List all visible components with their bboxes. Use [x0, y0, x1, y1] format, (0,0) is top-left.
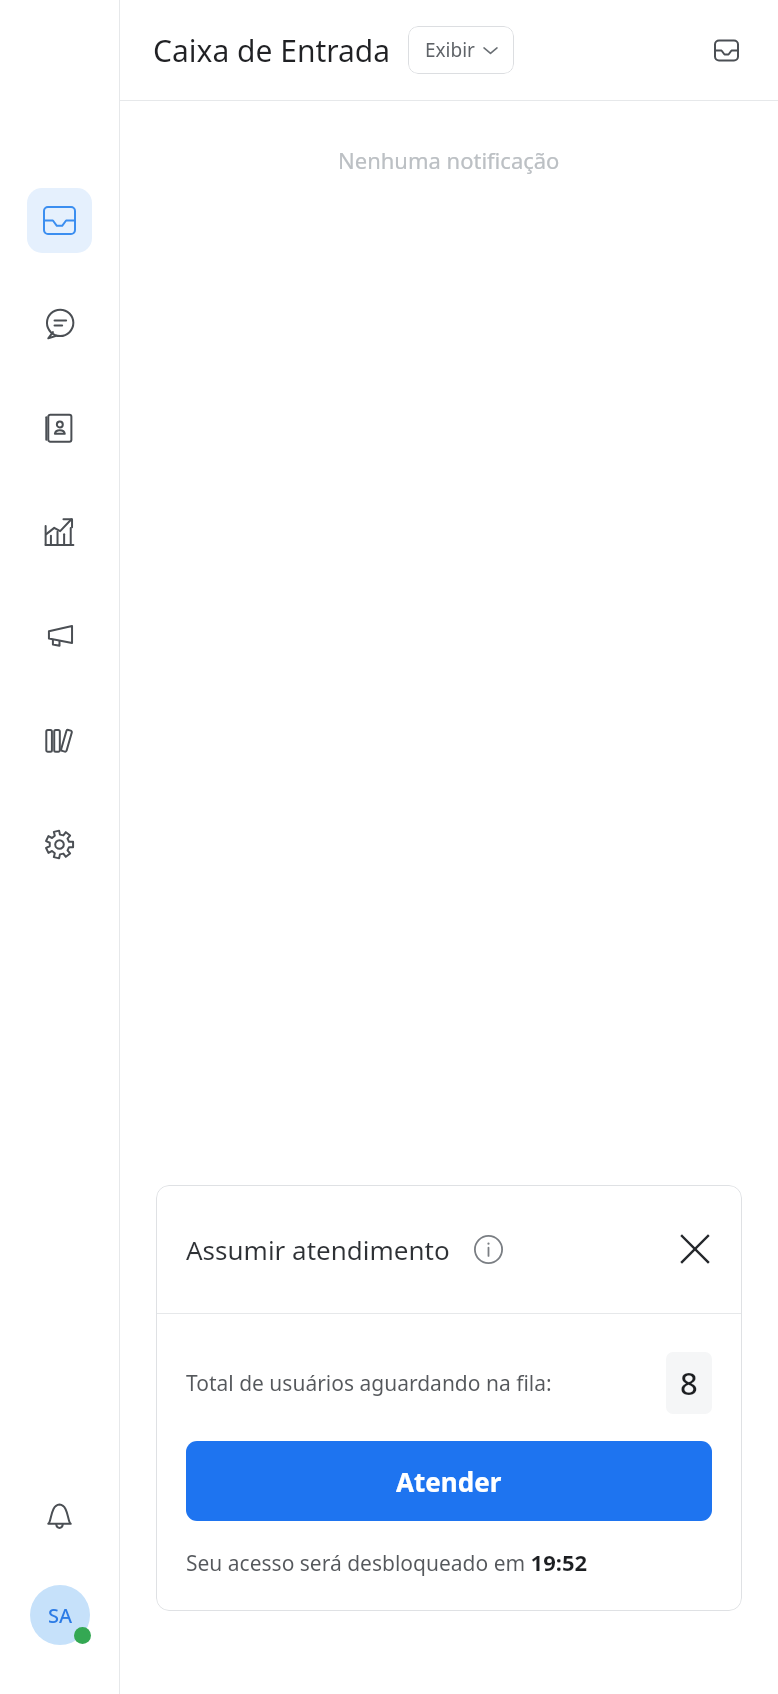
staticText: Nenhuma notificação: [338, 145, 560, 175]
button[interactable]: Atender: [186, 1441, 712, 1521]
button[interactable]: Perfil SA: [28, 1583, 92, 1647]
button[interactable]: Notificações: [27, 1484, 92, 1549]
button[interactable]: Caixa: [702, 26, 750, 74]
button[interactable]: Configurações: [27, 812, 92, 877]
staticText: Total de usuários aguardando na fila:: [186, 1369, 552, 1398]
staticText: SA: [48, 1602, 73, 1629]
staticText: 8: [680, 1362, 698, 1404]
button[interactable]: Relatórios: [27, 500, 92, 565]
button[interactable]: Informações: [468, 1229, 508, 1269]
staticText: Atender: [396, 1464, 502, 1499]
button[interactable]: Caixa de Entrada: [27, 188, 92, 253]
button[interactable]: Contatos: [27, 396, 92, 461]
button[interactable]: Campanhas: [27, 604, 92, 669]
staticText: Assumir atendimento: [186, 1232, 450, 1267]
button[interactable]: Exibir: [408, 26, 514, 74]
staticText: Caixa de Entrada: [153, 30, 391, 71]
button[interactable]: Fechar: [672, 1226, 718, 1272]
button[interactable]: Conversas: [27, 292, 92, 357]
staticText: Exibir: [425, 37, 475, 63]
button[interactable]: Biblioteca: [27, 708, 92, 773]
staticText: Seu acesso será desbloqueado em 19:52: [186, 1547, 588, 1577]
